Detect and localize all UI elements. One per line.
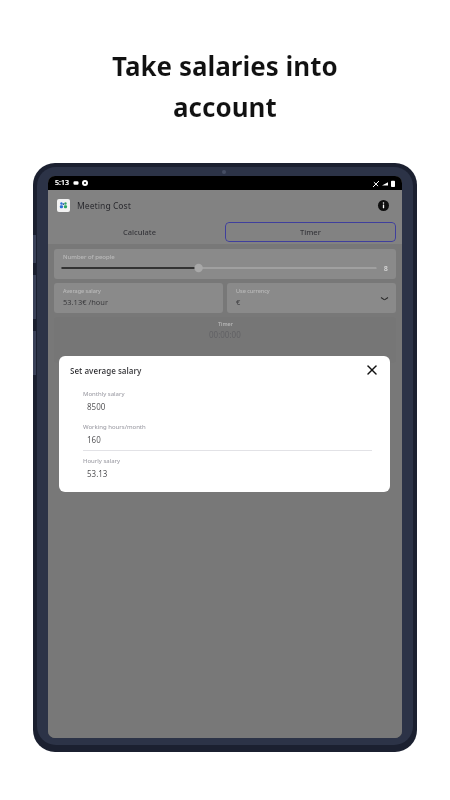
staticText: Use currency xyxy=(236,287,270,294)
staticText: 160 xyxy=(87,434,101,445)
button[interactable]: Use currency xyxy=(227,283,396,313)
staticText: 53.13 xyxy=(87,468,108,479)
staticText: € xyxy=(236,297,241,307)
staticText: 53.13€ /hour xyxy=(63,297,109,307)
staticText: Number of people xyxy=(63,253,115,261)
button[interactable]: Hourly salary xyxy=(59,451,390,484)
staticText: account xyxy=(173,89,277,124)
staticText: 5:13 xyxy=(55,178,69,188)
staticText: Monthly salary xyxy=(83,390,125,398)
staticText: 8500 xyxy=(87,401,106,412)
staticText: Hourly salary xyxy=(83,457,121,465)
staticText: Timer xyxy=(300,227,321,237)
staticText: 00:00:00 xyxy=(209,329,241,340)
staticText: Meeting Cost xyxy=(77,200,131,212)
button[interactable]: Calculate xyxy=(54,222,225,242)
staticText: 8 xyxy=(384,264,388,273)
staticText: Calculate xyxy=(123,227,156,237)
staticText: Average salary xyxy=(63,287,101,294)
button[interactable]: Timer xyxy=(225,222,396,242)
button[interactable]: Info xyxy=(374,196,392,214)
button[interactable]: Monthly salary xyxy=(59,384,390,417)
button[interactable]: Working hours/month xyxy=(59,417,390,451)
button[interactable]: Close xyxy=(364,362,380,378)
staticText: Set average salary xyxy=(70,365,142,376)
staticText: Take salaries into xyxy=(112,48,338,83)
button[interactable]: Number of people xyxy=(54,249,396,279)
staticText: Working hours/month xyxy=(83,423,146,431)
button[interactable]: Timer xyxy=(54,317,396,363)
button[interactable]: Average salary xyxy=(54,283,223,313)
staticText: Timer xyxy=(218,320,233,327)
